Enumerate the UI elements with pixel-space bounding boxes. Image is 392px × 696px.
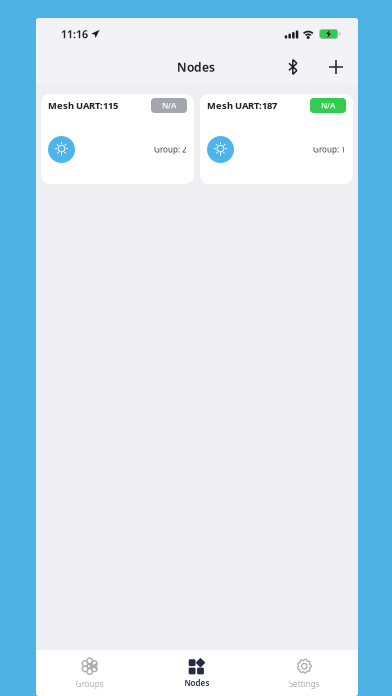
staticText: Mesh UART:187	[207, 99, 277, 112]
staticText: 11:16	[61, 27, 88, 41]
staticText: Nodes	[177, 59, 215, 75]
button[interactable]: Mesh UART:115	[41, 94, 194, 184]
button[interactable]: Bluetooth	[280, 54, 306, 80]
staticText: Nodes	[184, 678, 209, 688]
button[interactable]: Nodes	[143, 652, 251, 694]
staticText: N/A	[162, 100, 176, 111]
staticText: Settings	[289, 679, 320, 689]
button[interactable]: Settings	[251, 651, 358, 695]
staticText: Mesh UART:115	[48, 99, 118, 112]
staticText: Groups	[76, 679, 104, 689]
staticText: Group: 2	[154, 144, 187, 155]
button[interactable]: Mesh UART:187	[200, 94, 353, 184]
button[interactable]: Add node	[323, 54, 349, 80]
staticText: N/A	[321, 100, 335, 111]
staticText: Group: 1	[313, 144, 346, 155]
button[interactable]: Groups	[36, 651, 143, 695]
